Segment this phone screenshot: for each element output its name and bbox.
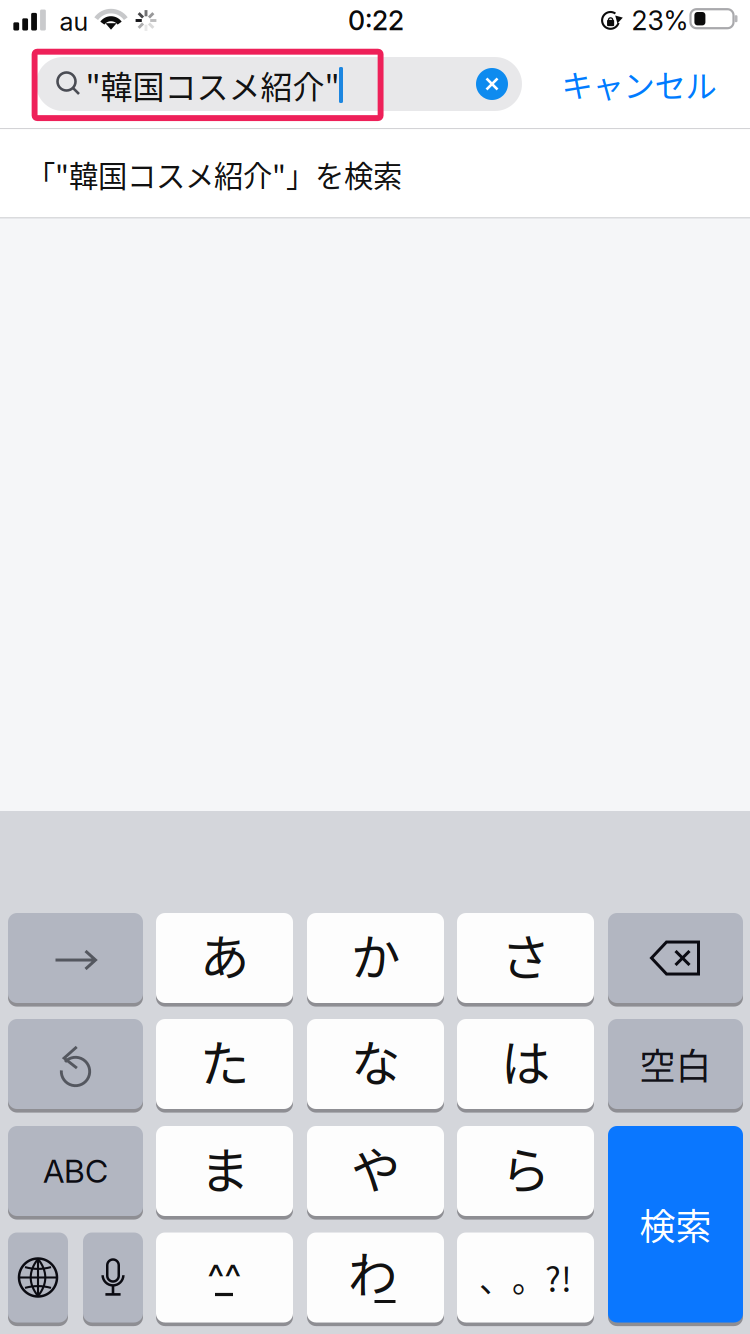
button[interactable] — [8, 1019, 143, 1113]
button[interactable] — [608, 913, 743, 1007]
staticText: au — [59, 6, 88, 37]
button[interactable]: わ — [307, 1232, 444, 1326]
button[interactable]: ^^ — [156, 1232, 293, 1326]
button[interactable]: "韓国コスメ紹介" — [36, 57, 522, 111]
button[interactable]: Clear text — [470, 62, 514, 106]
staticText: キャンセル — [561, 61, 716, 107]
button[interactable]: 検索 — [608, 1126, 743, 1326]
staticText: た — [200, 1024, 249, 1096]
staticText: 23% — [631, 4, 688, 37]
button[interactable]: キャンセル — [544, 53, 734, 115]
button[interactable]: は — [457, 1019, 594, 1113]
staticText: ま — [200, 1131, 249, 1203]
staticText: 空白 — [639, 1038, 711, 1090]
button[interactable]: や — [307, 1126, 444, 1220]
button[interactable]: さ — [457, 913, 594, 1007]
button[interactable]: か — [307, 913, 444, 1007]
button[interactable]: な — [307, 1019, 444, 1113]
staticText: "韓国コスメ紹介" — [85, 62, 339, 108]
button[interactable]: た — [156, 1019, 293, 1113]
staticText: あ — [200, 918, 249, 990]
staticText: ABC — [43, 1152, 108, 1190]
staticText: は — [501, 1024, 550, 1096]
staticText: 、。?! — [479, 1253, 572, 1302]
button[interactable] — [8, 913, 143, 1007]
staticText: さ — [501, 918, 550, 990]
staticText: 0:22 — [348, 4, 404, 37]
staticText: ^^ — [207, 1255, 241, 1301]
staticText: ら — [501, 1131, 550, 1203]
button[interactable]: ま — [156, 1126, 293, 1220]
button[interactable]: 、。?! — [457, 1232, 594, 1326]
staticText: な — [351, 1024, 400, 1096]
button[interactable]: 空白 — [608, 1019, 743, 1113]
staticText: わ — [348, 1236, 397, 1307]
button[interactable]: ら — [457, 1126, 594, 1220]
staticText: 「"韓国コスメ紹介"」を検索 — [26, 153, 402, 195]
button[interactable] — [8, 1232, 68, 1326]
button[interactable]: ABC — [8, 1126, 143, 1220]
staticText: や — [351, 1131, 400, 1203]
staticText: 検索 — [639, 1198, 711, 1250]
staticText: か — [351, 918, 400, 990]
button[interactable]: あ — [156, 913, 293, 1007]
button[interactable] — [83, 1232, 143, 1326]
button[interactable]: 「"韓国コスメ紹介"」を検索 — [0, 129, 750, 217]
